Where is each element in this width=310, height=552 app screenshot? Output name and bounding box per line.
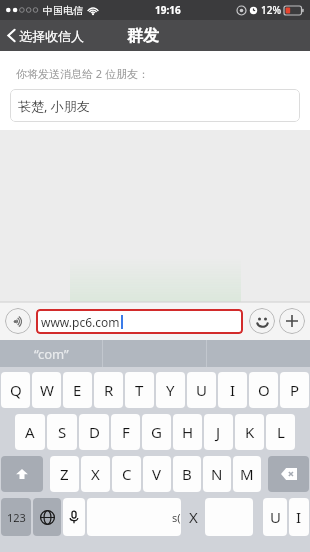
staticText: A — [25, 422, 35, 442]
button[interactable]: 苌楚, 小朋友 — [10, 89, 300, 122]
button[interactable]: X — [183, 498, 203, 536]
button[interactable]: D — [79, 414, 109, 450]
staticText: T — [135, 380, 144, 400]
button[interactable]: U — [263, 498, 287, 536]
button[interactable]: P — [280, 372, 309, 408]
button[interactable]: www.pc6.com — [36, 309, 243, 334]
button[interactable]: B — [173, 456, 201, 492]
button[interactable]: I — [218, 372, 247, 408]
staticText: Y — [166, 380, 175, 400]
button[interactable]: 更多 — [279, 308, 305, 334]
button[interactable]: Z — [50, 456, 79, 492]
staticText: U — [196, 380, 207, 400]
button[interactable]: A — [15, 414, 45, 450]
button[interactable]: 123 — [1, 498, 31, 536]
staticText: H — [182, 422, 194, 442]
button[interactable]: F — [111, 414, 140, 450]
staticText: R — [104, 380, 114, 400]
button[interactable]: 语音输入 — [5, 308, 31, 334]
staticText: Z — [60, 464, 69, 484]
staticText: P — [290, 380, 300, 400]
staticText: 选择收信人 — [19, 28, 84, 44]
button[interactable]: L — [266, 414, 295, 450]
button[interactable]: U — [187, 372, 216, 408]
staticText: www.pc6.com — [41, 314, 120, 330]
staticText: V — [152, 464, 162, 484]
staticText: 123 — [7, 510, 26, 525]
staticText: B — [182, 464, 192, 484]
staticText: K — [245, 422, 255, 442]
staticText: Q — [10, 380, 22, 400]
staticText: S — [58, 422, 67, 442]
staticText: 群发 — [127, 26, 159, 46]
staticText: N — [211, 464, 223, 484]
button[interactable]: O — [249, 372, 278, 408]
button[interactable]: C — [112, 456, 141, 492]
button[interactable]: I — [289, 498, 309, 536]
staticText: I — [296, 507, 302, 527]
staticText: I — [230, 380, 236, 400]
button[interactable]: H — [173, 414, 202, 450]
button[interactable]: Y — [156, 372, 185, 408]
staticText: F — [122, 422, 130, 442]
button[interactable]: Q — [1, 372, 30, 408]
button[interactable]: Backspace — [268, 456, 309, 492]
staticText: G — [151, 422, 162, 442]
button[interactable]: M — [233, 456, 261, 492]
staticText: X — [91, 464, 100, 484]
button[interactable]: S — [47, 414, 77, 450]
button[interactable]: s( — [87, 498, 181, 536]
button[interactable]: W — [32, 372, 61, 408]
button[interactable]: 切换输入法 — [33, 498, 61, 536]
staticText: W — [40, 380, 54, 400]
button[interactable]: “com” — [0, 340, 102, 367]
staticText: C — [122, 464, 132, 484]
button[interactable]: K — [235, 414, 264, 450]
staticText: U — [270, 507, 281, 527]
staticText: 19:16 — [155, 3, 181, 17]
button[interactable]: Shift — [1, 456, 43, 492]
staticText: 你将发送消息给 2 位朋友： — [16, 66, 150, 81]
button[interactable]: V — [143, 456, 171, 492]
button[interactable]: T — [125, 372, 154, 408]
button[interactable]: N — [203, 456, 231, 492]
button[interactable]: 返回 选择收信人 — [7, 20, 310, 51]
button[interactable]: G — [142, 414, 171, 450]
staticText: O — [258, 380, 270, 400]
staticText: 12% — [261, 3, 281, 17]
staticText: M — [240, 464, 254, 484]
staticText: J — [216, 422, 221, 442]
button[interactable]: 表情 — [249, 308, 275, 334]
button[interactable]: J — [204, 414, 233, 450]
staticText: “com” — [34, 345, 69, 363]
button[interactable]: R — [94, 372, 123, 408]
staticText: L — [277, 422, 285, 442]
staticText: 中国电信 — [43, 4, 83, 17]
staticText: 苌楚, 小朋友 — [18, 97, 90, 115]
button[interactable]: 语音 — [63, 498, 85, 536]
button[interactable]: E — [63, 372, 92, 408]
staticText: E — [73, 380, 82, 400]
staticText: s( — [172, 510, 181, 525]
staticText: X — [189, 507, 198, 527]
button[interactable]: X — [81, 456, 110, 492]
staticText: D — [89, 422, 100, 442]
